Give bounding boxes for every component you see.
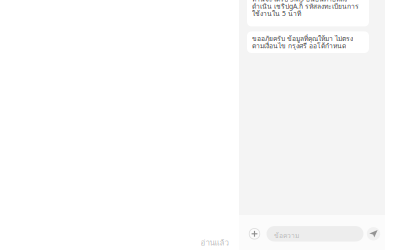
staticText: ขออภัยครับ ข้อมูลที่คุณให้มา ไม่ตรง — [252, 33, 353, 44]
staticText: ตามเงื่อนไข กรุงศรี ออโต้กำหนด — [252, 41, 346, 51]
button[interactable]: Send — [365, 226, 381, 242]
staticText: อ่านแล้ว — [200, 236, 228, 249]
staticText: ใช้งานใน 5 นาที — [252, 9, 301, 19]
button[interactable]: ข้อความ — [266, 226, 363, 241]
button[interactable]: Add attachment — [246, 226, 262, 242]
staticText: ท่านจะได้รับ SMS ยืนยันภายหลัง — [252, 0, 347, 4]
staticText: ดำเนิน เชริปgA.ก็ รหัสลงทะเบียนการ — [252, 1, 359, 12]
staticText: ข้อความ — [274, 230, 299, 241]
